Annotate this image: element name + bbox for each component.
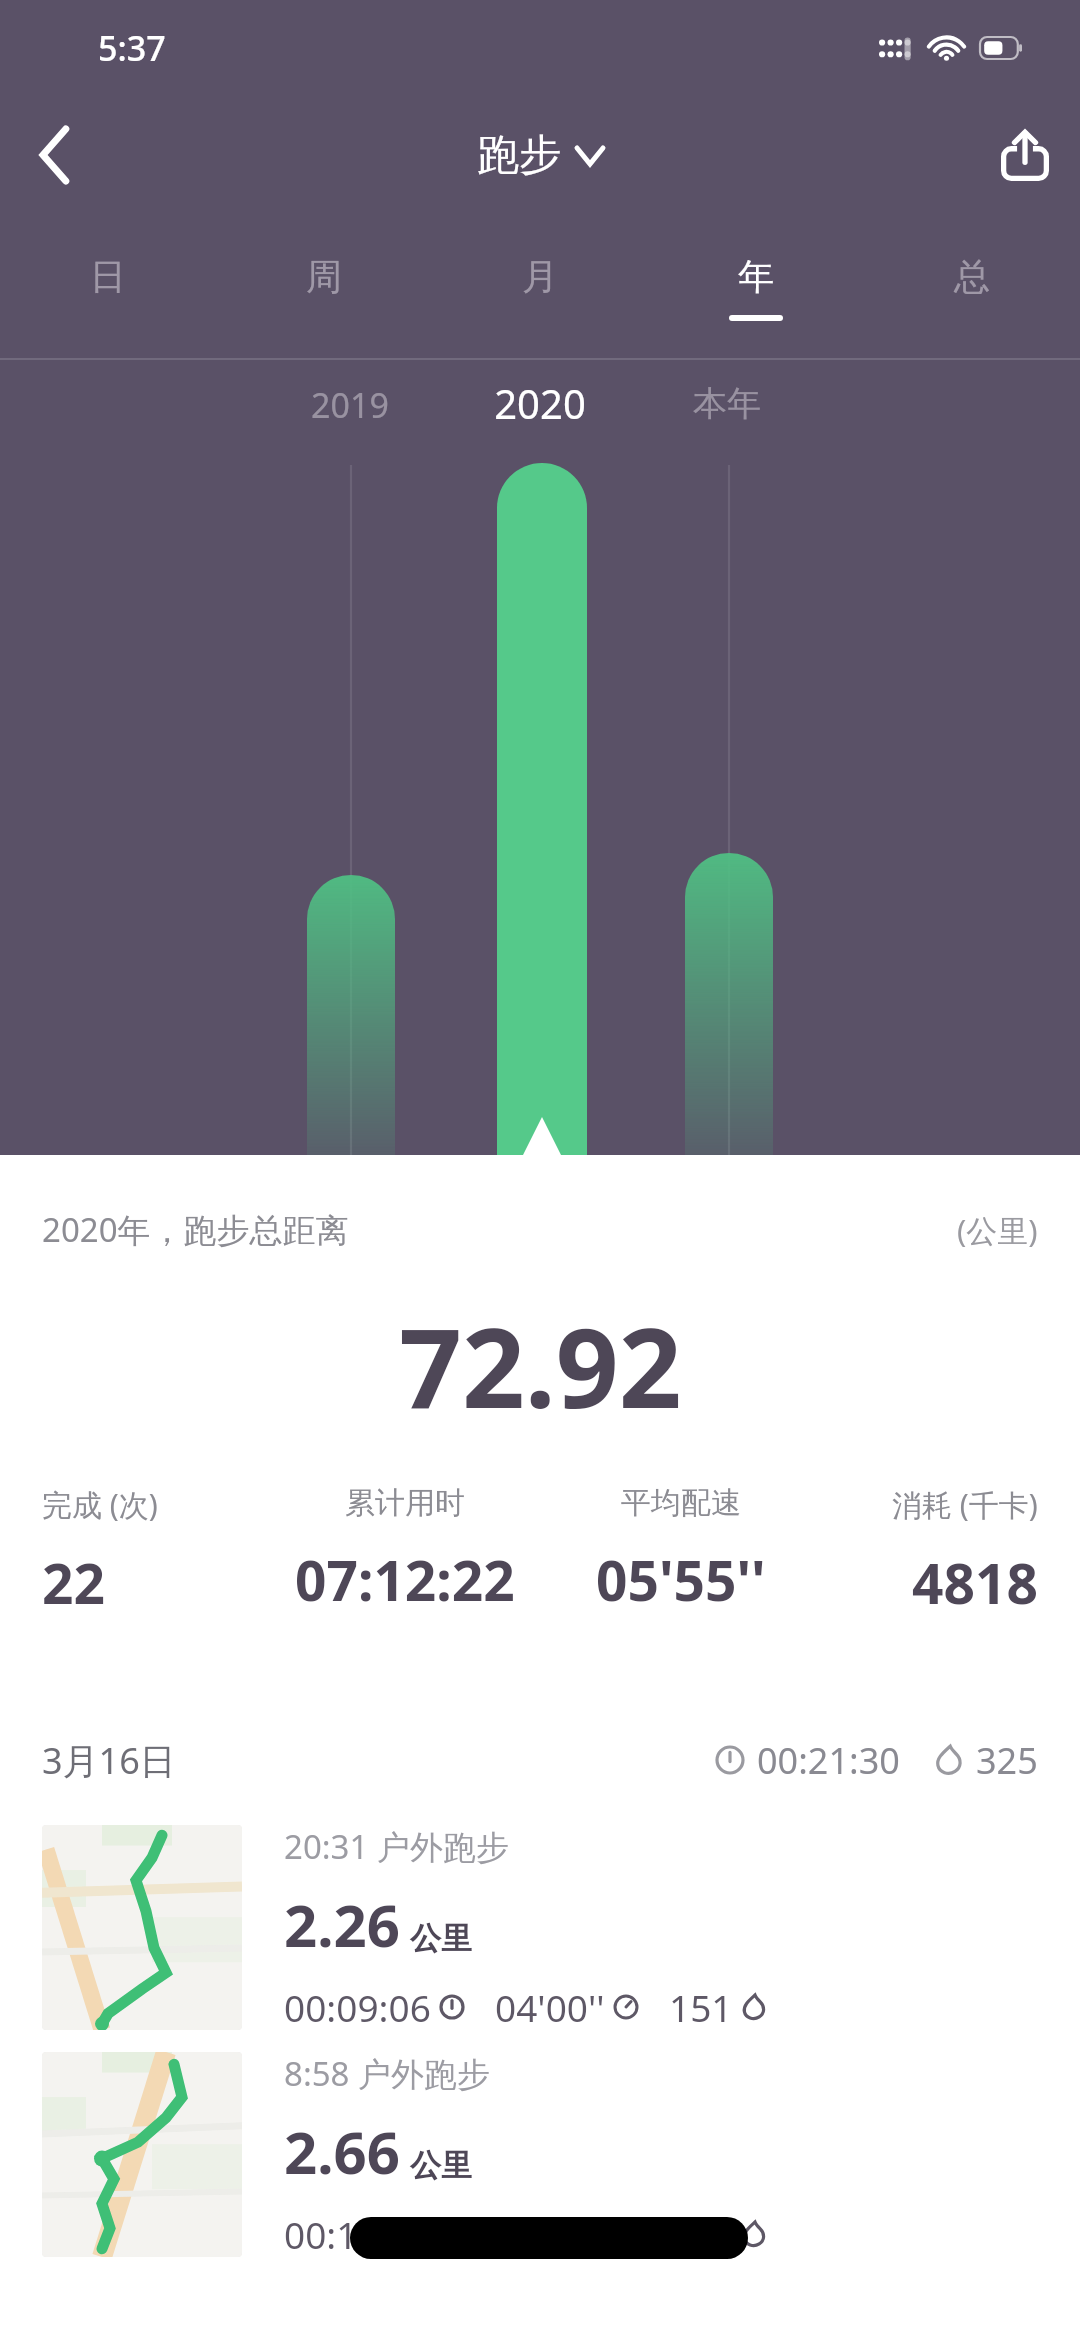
button[interactable]: 日 bbox=[0, 215, 216, 360]
button[interactable]: 8:58 户外跑步 bbox=[0, 2041, 1080, 2268]
button[interactable]: 2020 bbox=[465, 376, 615, 430]
button[interactable]: 年 bbox=[648, 215, 864, 360]
button[interactable]: 周 bbox=[216, 215, 432, 360]
button[interactable]: 月 bbox=[432, 215, 648, 360]
staticText: 00:09:06 bbox=[284, 1982, 431, 2032]
staticText: 累计用时 bbox=[345, 1484, 465, 1522]
staticText: 总 bbox=[954, 254, 990, 299]
staticText: (公里) bbox=[957, 1209, 1038, 1251]
staticText: 4818 bbox=[912, 1545, 1038, 1620]
button[interactable]: 3月16日 bbox=[0, 1706, 1080, 1814]
staticText: 04'00'' bbox=[495, 1982, 605, 2032]
staticText: 8:58 户外跑步 bbox=[284, 2051, 491, 2096]
staticText: 平均配速 bbox=[621, 1484, 741, 1522]
button[interactable]: 跑步 bbox=[477, 129, 603, 182]
staticText: 日 bbox=[90, 254, 126, 299]
button[interactable]: 总 bbox=[864, 215, 1080, 360]
staticText: 151 bbox=[669, 1982, 733, 2032]
button[interactable]: 本年 bbox=[662, 382, 792, 425]
staticText: 174 bbox=[669, 2209, 733, 2259]
staticText: 00:21:30 bbox=[757, 1736, 900, 1785]
button[interactable]: 2019 bbox=[288, 382, 412, 428]
staticText: 月 bbox=[522, 254, 558, 299]
button[interactable]: Share bbox=[970, 100, 1080, 210]
button[interactable]: 20:31 户外跑步 bbox=[0, 1814, 1080, 2041]
button[interactable]: Back bbox=[0, 100, 110, 210]
staticText: 72.92 bbox=[399, 1290, 682, 1440]
staticText: 07:12:22 bbox=[295, 1542, 515, 1617]
staticText: 2.66 bbox=[284, 2112, 400, 2191]
staticText: 325 bbox=[976, 1736, 1038, 1785]
staticText: 公里 bbox=[410, 2146, 472, 2185]
staticText: 2020年，跑步总距离 bbox=[42, 1207, 349, 1252]
staticText: 年 bbox=[738, 254, 774, 299]
staticText: 05'55'' bbox=[596, 1542, 766, 1617]
staticText: 完成 (次) bbox=[42, 1484, 158, 1525]
staticText: 跑步 bbox=[477, 129, 561, 182]
staticText: 5:37 bbox=[98, 25, 166, 71]
staticText: 00:12:24 bbox=[284, 2209, 431, 2259]
staticText: 周 bbox=[306, 254, 342, 299]
staticText: 消耗 (千卡) bbox=[892, 1484, 1038, 1525]
staticText: 公里 bbox=[410, 1919, 472, 1958]
staticText: 20:31 户外跑步 bbox=[284, 1824, 509, 1869]
staticText: 2.26 bbox=[284, 1885, 400, 1964]
staticText: 04'39'' bbox=[495, 2209, 605, 2259]
staticText: 3月16日 bbox=[42, 1736, 176, 1785]
staticText: 22 bbox=[42, 1545, 105, 1620]
